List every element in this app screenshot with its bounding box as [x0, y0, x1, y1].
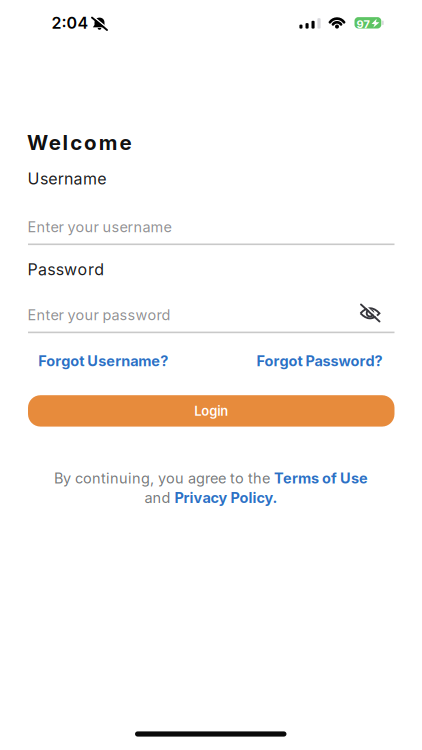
staticText: Enter your username: [27, 218, 171, 236]
button[interactable]: Forgot Username?: [38, 352, 168, 370]
staticText: Forgot Username?: [38, 352, 168, 370]
staticText: 97: [357, 18, 370, 31]
staticText: Welcome: [27, 130, 131, 155]
staticText: 2:04: [51, 13, 88, 33]
button[interactable]: Privacy Policy.: [174, 489, 277, 506]
textField[interactable]: Enter your username: [27, 218, 394, 245]
staticText: Password: [27, 260, 104, 279]
button[interactable]: Forgot Password?: [256, 352, 382, 370]
textField[interactable]: Enter your password: [27, 306, 394, 333]
staticText: Enter your password: [27, 306, 170, 324]
staticText: and: [144, 489, 174, 506]
button[interactable]: Login: [28, 395, 394, 427]
staticText: Login: [194, 403, 228, 419]
staticText: Username: [27, 169, 106, 188]
button[interactable]: Show password: [356, 300, 384, 326]
staticText: Privacy Policy.: [174, 489, 277, 506]
staticText: Forgot Password?: [256, 352, 382, 370]
staticText: By continuing, you agree to the: [54, 469, 274, 487]
staticText: Terms of Use: [274, 469, 368, 487]
button[interactable]: Terms of Use: [274, 469, 368, 487]
